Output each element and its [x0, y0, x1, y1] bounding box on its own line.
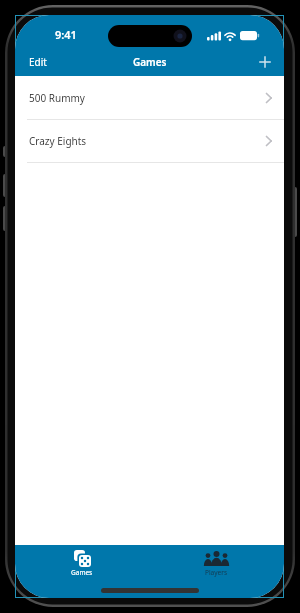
- button[interactable]: Crazy Eights: [15, 120, 284, 162]
- staticText: 9:41: [55, 27, 77, 42]
- button[interactable]: Games: [15, 545, 149, 583]
- staticText: Games: [71, 568, 93, 577]
- button[interactable]: Edit: [15, 51, 55, 73]
- staticText: Edit: [29, 55, 47, 69]
- staticText: Crazy Eights: [29, 134, 87, 148]
- button[interactable]: Players: [149, 545, 284, 583]
- button[interactable]: 500 Rummy: [15, 76, 284, 119]
- button[interactable]: [254, 51, 276, 73]
- staticText: Players: [205, 568, 228, 577]
- staticText: Games: [133, 55, 167, 69]
- staticText: 500 Rummy: [29, 91, 85, 105]
